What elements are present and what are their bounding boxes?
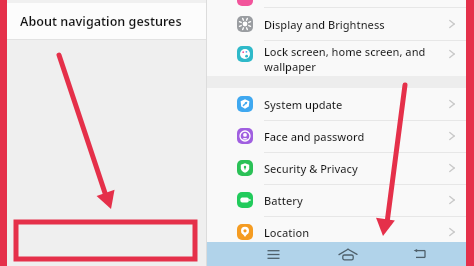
button[interactable] — [380, 242, 466, 266]
staticText: About navigation gestures — [20, 13, 182, 30]
button[interactable]: Lock screen, home screen, and — [207, 41, 466, 76]
button[interactable]: Display and Brightness — [207, 8, 466, 40]
staticText: Face and password — [264, 129, 365, 144]
button[interactable]: Battery — [207, 184, 466, 216]
button[interactable]: Security & Privacy — [207, 152, 466, 184]
staticText: Lock screen, home screen, and — [264, 44, 426, 59]
staticText: System update — [264, 97, 343, 112]
staticText: Location — [264, 225, 310, 240]
button[interactable]: Location — [207, 216, 466, 248]
button[interactable] — [207, 242, 294, 266]
staticText: wallpaper — [264, 59, 317, 74]
staticText: Battery — [264, 193, 303, 208]
button[interactable]: Face and password — [207, 120, 466, 152]
staticText: Display and Brightness — [264, 17, 385, 32]
staticText: Security & Privacy — [264, 161, 358, 176]
button[interactable] — [294, 242, 380, 266]
button[interactable]: System update — [207, 88, 466, 120]
